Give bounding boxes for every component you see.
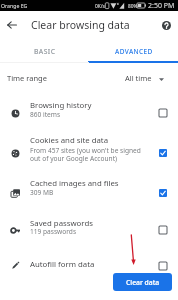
button[interactable]: Autofill form data bbox=[155, 258, 171, 274]
button[interactable]: Clear data bbox=[113, 273, 172, 291]
staticText: Autofill form data bbox=[30, 259, 95, 270]
staticText: Saved passwords bbox=[30, 218, 93, 229]
staticText: Orange EG bbox=[1, 2, 28, 9]
button[interactable]: Browsing history bbox=[155, 105, 171, 121]
staticText: BASIC bbox=[34, 47, 56, 56]
staticText: 860 items bbox=[30, 110, 160, 119]
staticText: ADVANCED bbox=[115, 47, 153, 56]
button[interactable]: Saved passwords bbox=[155, 222, 171, 238]
staticText: 309 MB bbox=[30, 188, 160, 197]
staticText: Clear data bbox=[126, 278, 160, 287]
staticText: 80% bbox=[128, 3, 138, 10]
staticText: 119 passwords bbox=[30, 227, 160, 236]
button[interactable]: ADVANCED bbox=[89, 38, 178, 57]
staticText: Time range bbox=[7, 73, 47, 83]
staticText: From 457 sites (you won't be signed out … bbox=[30, 146, 160, 163]
staticText: Browsing history bbox=[30, 100, 92, 111]
button[interactable]: Navigate up bbox=[0, 13, 24, 37]
button[interactable]: Saved passwords bbox=[0, 212, 178, 248]
staticText: All time bbox=[125, 73, 152, 83]
button[interactable]: Help and feedback bbox=[156, 15, 176, 35]
staticText: Clear browsing data bbox=[31, 18, 130, 32]
button[interactable]: Autofill form data bbox=[0, 248, 178, 284]
staticText: 2:50 PM bbox=[148, 1, 175, 11]
staticText: Cached images and files bbox=[30, 178, 119, 189]
button[interactable]: Cookies and site data bbox=[0, 133, 178, 174]
button[interactable]: Cached images and files bbox=[155, 185, 171, 201]
button[interactable]: BASIC bbox=[0, 38, 89, 57]
button[interactable]: Time range bbox=[0, 66, 178, 88]
staticText: Cookies and site data bbox=[30, 135, 109, 146]
staticText: 0K/s bbox=[95, 3, 105, 10]
button[interactable]: Browsing history bbox=[0, 89, 178, 133]
button[interactable]: Cookies and site data bbox=[155, 145, 171, 161]
button[interactable]: Cached images and files bbox=[0, 174, 178, 212]
